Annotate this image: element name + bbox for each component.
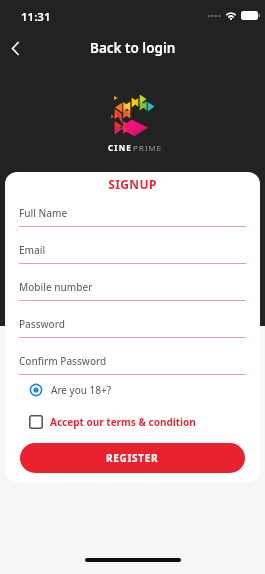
button[interactable]: Back: [0, 33, 30, 63]
staticText: SIGNUP: [5, 176, 260, 192]
staticText: Are you 18+?: [51, 383, 111, 397]
staticText: REGISTER: [106, 451, 159, 465]
staticText: Back to login: [90, 39, 176, 57]
button[interactable]: Accept our terms & condition: [29, 415, 196, 429]
staticText: Accept our terms & condition: [50, 415, 196, 429]
staticText: PRIME: [133, 142, 163, 153]
staticText: CINE: [108, 142, 133, 153]
staticText: Full Name: [19, 206, 68, 220]
button[interactable]: Are you 18+?: [29, 382, 111, 398]
staticText: Mobile number: [19, 280, 93, 294]
staticText: Password: [19, 317, 65, 331]
staticText: Confirm Password: [19, 354, 107, 368]
button[interactable]: REGISTER: [20, 443, 245, 473]
staticText: 11:31: [21, 9, 51, 25]
staticText: Email: [19, 243, 46, 257]
